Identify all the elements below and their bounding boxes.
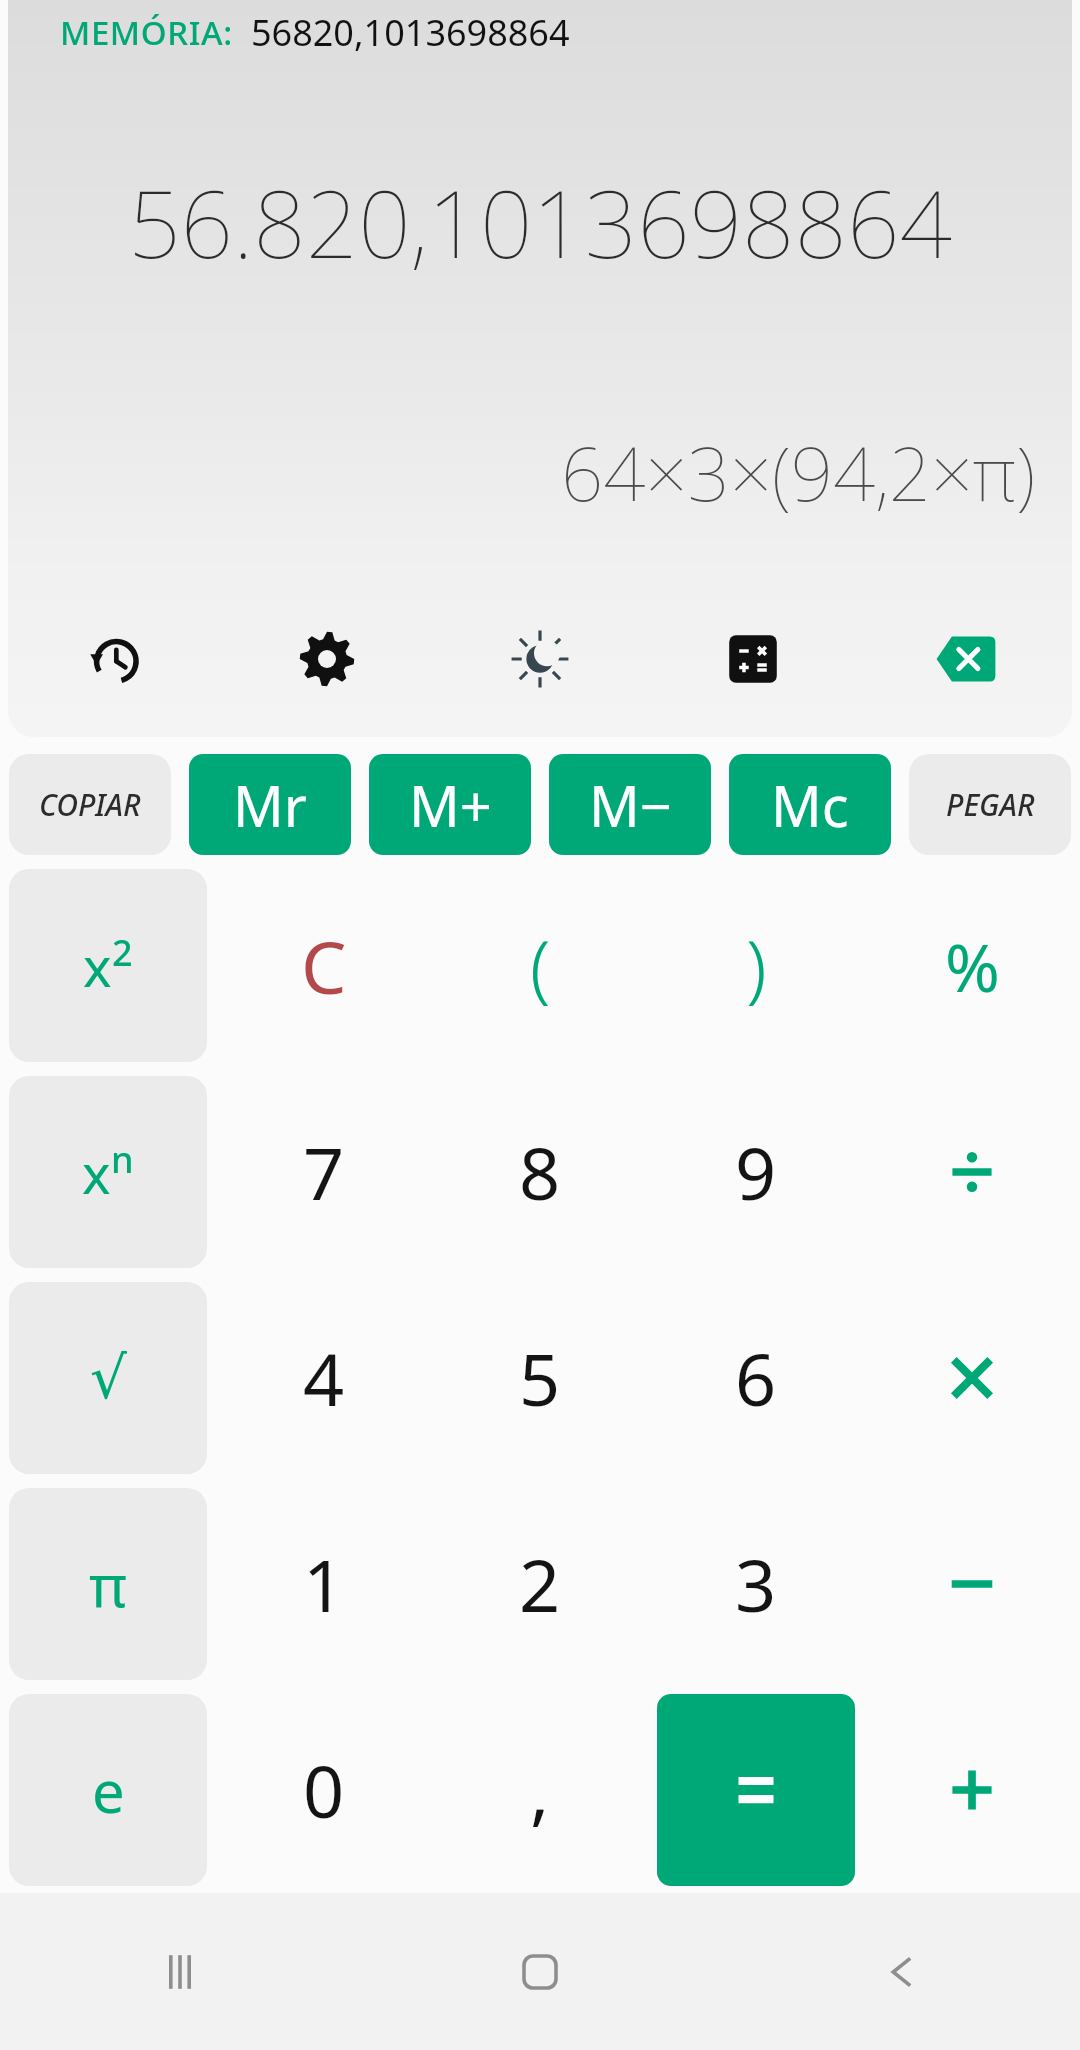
staticText: ) (746, 915, 767, 1016)
staticText: √ (90, 1344, 127, 1412)
button[interactable]: Mc (729, 754, 891, 855)
button[interactable]: PEGAR (909, 754, 1071, 855)
button[interactable]: 9 (657, 1076, 855, 1268)
button[interactable]: ) (657, 869, 855, 1062)
staticText: 56820,1013698864 (251, 8, 570, 57)
staticText: 56.820,1013698864 (128, 160, 952, 285)
button[interactable]: Theme (433, 611, 646, 707)
staticText: n (111, 1135, 134, 1184)
staticText: 1 (303, 1535, 345, 1633)
staticText: 7 (303, 1123, 345, 1221)
button[interactable]: x² (9, 869, 207, 1062)
button[interactable]: Scientific mode (646, 611, 859, 707)
staticText: Mr (233, 767, 307, 843)
button[interactable]: Backspace (859, 611, 1072, 707)
staticText: 9 (735, 1123, 777, 1221)
button[interactable]: 3 (657, 1488, 855, 1680)
button[interactable]: 5 (441, 1282, 639, 1474)
staticText: 2 (112, 928, 133, 977)
staticText: 8 (519, 1123, 561, 1221)
button[interactable]: , (441, 1694, 639, 1886)
staticText: PEGAR (946, 784, 1035, 825)
staticText: M− (589, 767, 672, 843)
staticText: Mc (771, 767, 849, 843)
staticText: π (89, 1545, 127, 1624)
button[interactable]: e (9, 1694, 207, 1886)
button[interactable]: ( (441, 869, 639, 1062)
staticText: % (945, 921, 1000, 1011)
button[interactable]: Plus (873, 1694, 1071, 1886)
button[interactable]: % (873, 869, 1071, 1062)
button[interactable]: 8 (441, 1076, 639, 1268)
button[interactable]: M+ (369, 754, 531, 855)
staticText: C (301, 917, 347, 1015)
staticText: 4 (303, 1329, 345, 1427)
button[interactable]: 2 (441, 1488, 639, 1680)
staticText: COPIAR (39, 784, 141, 825)
staticText: ( (530, 915, 551, 1016)
button[interactable]: Equals (657, 1694, 855, 1886)
button[interactable]: Mr (189, 754, 351, 855)
button[interactable]: π (9, 1488, 207, 1680)
staticText: M+ (409, 767, 492, 843)
button[interactable]: Back (720, 1893, 1080, 2050)
button[interactable]: Divide (873, 1076, 1071, 1268)
button[interactable]: COPIAR (9, 754, 171, 855)
staticText: 3 (735, 1535, 777, 1633)
button[interactable]: Settings (220, 611, 433, 707)
staticText: 6 (735, 1329, 777, 1427)
staticText: 64×3×(94,2×π) (561, 422, 1036, 523)
button[interactable]: Multiply (873, 1282, 1071, 1474)
button[interactable]: √ (9, 1282, 207, 1474)
staticText: e (92, 1751, 125, 1830)
staticText: x (82, 1136, 111, 1210)
staticText: x (83, 929, 112, 1003)
button[interactable]: C (225, 869, 423, 1062)
button[interactable]: 4 (225, 1282, 423, 1474)
button[interactable]: History (8, 611, 220, 707)
button[interactable]: xⁿ (9, 1076, 207, 1268)
staticText: 2 (519, 1535, 561, 1633)
button[interactable]: Recent apps (0, 1893, 360, 2050)
button[interactable]: M− (549, 754, 711, 855)
staticText: MEMÓRIA: (60, 10, 233, 55)
staticText: 5 (519, 1329, 561, 1427)
button[interactable]: Home (360, 1893, 720, 2050)
button[interactable]: Minus (873, 1488, 1071, 1680)
button[interactable]: 6 (657, 1282, 855, 1474)
button[interactable]: 0 (225, 1694, 423, 1886)
staticText: , (530, 1741, 550, 1839)
button[interactable]: 1 (225, 1488, 423, 1680)
button[interactable]: 7 (225, 1076, 423, 1268)
staticText: 0 (303, 1741, 345, 1839)
